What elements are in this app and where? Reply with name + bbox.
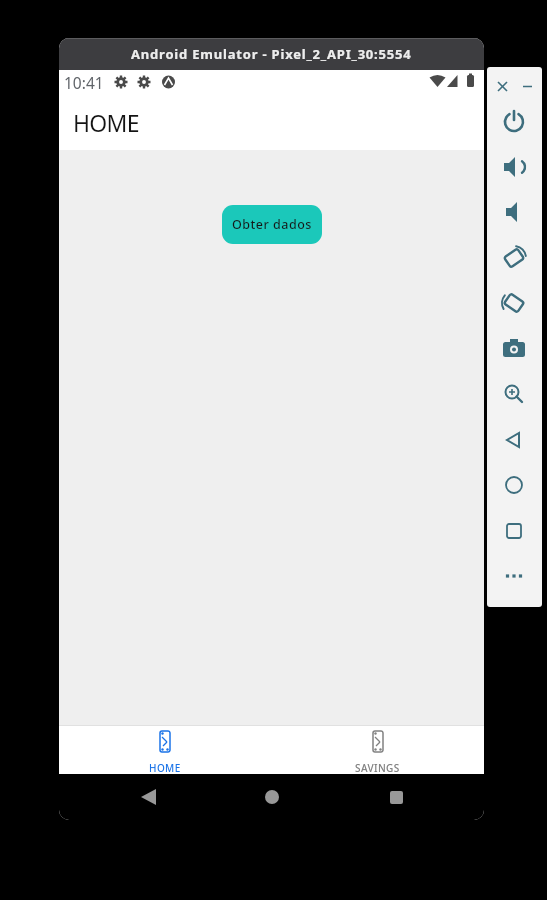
button[interactable] bbox=[249, 774, 295, 820]
button[interactable] bbox=[494, 420, 534, 460]
button[interactable] bbox=[494, 101, 534, 141]
button[interactable] bbox=[517, 76, 537, 96]
button[interactable] bbox=[494, 283, 534, 323]
staticText: 10:41 bbox=[64, 72, 104, 93]
button[interactable]: SAVINGS bbox=[271, 725, 484, 774]
staticText: HOME bbox=[73, 107, 139, 138]
button[interactable] bbox=[494, 556, 534, 596]
button[interactable] bbox=[373, 774, 419, 820]
button[interactable] bbox=[494, 238, 534, 278]
staticText: Android Emulator - Pixel_2_API_30:5554 bbox=[131, 45, 412, 63]
staticText: SAVINGS bbox=[355, 761, 400, 774]
button[interactable] bbox=[492, 76, 512, 96]
staticText: Obter dados bbox=[232, 216, 312, 233]
button[interactable] bbox=[494, 511, 534, 551]
button[interactable] bbox=[125, 774, 171, 820]
button[interactable]: HOME bbox=[59, 725, 271, 774]
button[interactable]: Obter dados bbox=[222, 205, 322, 244]
button[interactable] bbox=[494, 147, 534, 187]
staticText: HOME bbox=[149, 761, 181, 774]
button[interactable] bbox=[494, 192, 534, 232]
button[interactable] bbox=[494, 465, 534, 505]
button[interactable] bbox=[494, 374, 534, 414]
button[interactable] bbox=[494, 329, 534, 369]
